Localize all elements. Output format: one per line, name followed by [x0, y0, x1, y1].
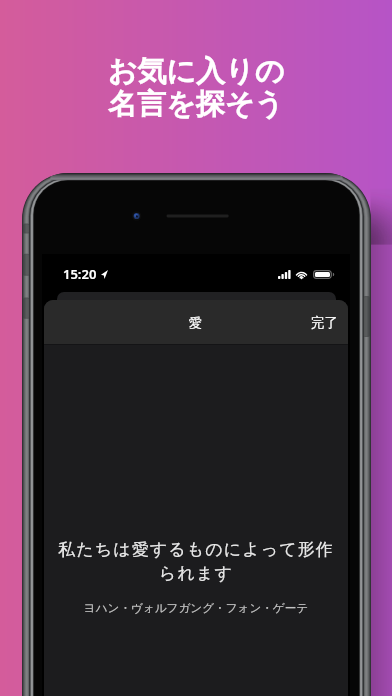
staticText: お気に入りの 名言を探そう — [0, 53, 392, 123]
button[interactable]: 完了 — [301, 303, 348, 342]
staticText: 完了 — [311, 314, 338, 331]
staticText: ヨハン・ヴォルフガング・フォン・ゲーテ — [42, 601, 350, 616]
staticText: 愛 — [189, 314, 203, 331]
staticText: 15:20 — [63, 265, 97, 283]
staticText: 私たちは愛するものによって形作 られます — [42, 539, 350, 584]
